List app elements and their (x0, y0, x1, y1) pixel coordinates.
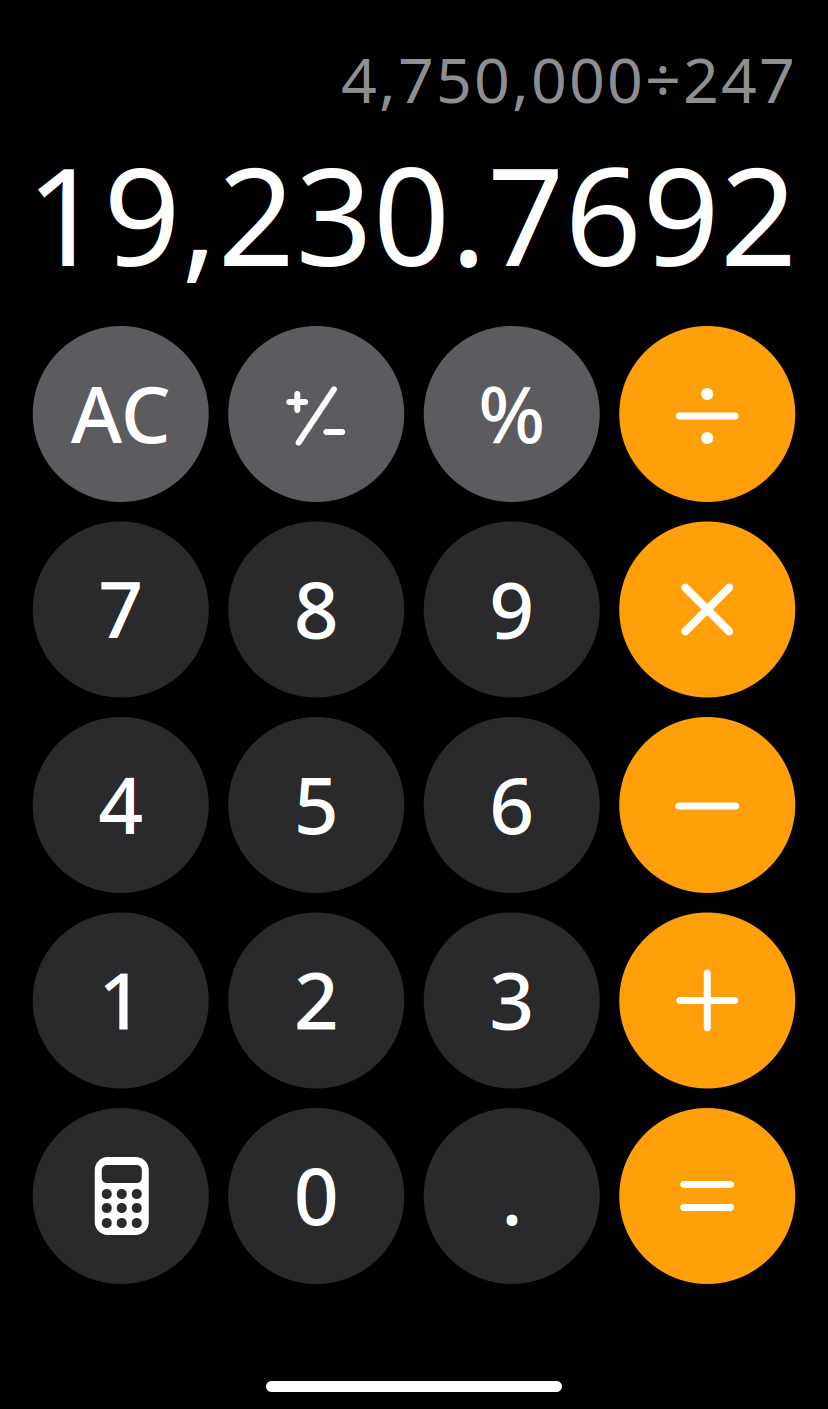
button[interactable]: Equals (619, 1108, 795, 1284)
button[interactable]: 1 (33, 912, 209, 1088)
staticText: 7 (98, 556, 143, 660)
button[interactable]: 2 (228, 912, 404, 1088)
staticText: 0 (294, 1142, 339, 1247)
button[interactable]: Toggle sign (228, 326, 404, 502)
staticText: 3 (489, 947, 534, 1051)
button[interactable]: 0 (228, 1108, 404, 1284)
staticText: 5 (294, 751, 339, 856)
staticText: % (478, 360, 545, 465)
button[interactable]: Subtract (619, 717, 795, 893)
button[interactable]: Calculator history (33, 1108, 209, 1284)
button[interactable]: 3 (424, 912, 600, 1088)
staticText: 2 (294, 947, 339, 1051)
staticText: 19,230.7692 (26, 124, 797, 303)
button[interactable]: Divide (619, 326, 795, 502)
staticText: 4 (98, 751, 143, 856)
button[interactable]: . (424, 1108, 600, 1284)
button[interactable]: Add (619, 912, 795, 1088)
button[interactable]: 6 (424, 717, 600, 893)
staticText: 6 (489, 751, 534, 856)
button[interactable]: 7 (33, 521, 209, 697)
staticText: 1 (98, 947, 143, 1051)
button[interactable]: AC (33, 326, 209, 502)
staticText: 8 (294, 556, 339, 660)
button[interactable]: 4 (33, 717, 209, 893)
staticText: 9 (489, 556, 534, 660)
staticText: . (501, 1142, 522, 1247)
button[interactable]: Multiply (619, 521, 795, 697)
button[interactable]: % (424, 326, 600, 502)
button[interactable]: 5 (228, 717, 404, 893)
button[interactable]: 8 (228, 521, 404, 697)
staticText: AC (71, 360, 171, 465)
staticText: 4,750,000÷247 (341, 37, 795, 120)
button[interactable]: 9 (424, 521, 600, 697)
